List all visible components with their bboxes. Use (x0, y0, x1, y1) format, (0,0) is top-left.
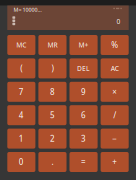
staticText: 8 (50, 86, 55, 97)
staticText: 7 (19, 86, 24, 97)
button[interactable]: MR (38, 35, 66, 55)
button[interactable]: = (69, 152, 98, 172)
staticText: = (81, 157, 86, 167)
staticText: AC (111, 64, 119, 73)
button[interactable]: 8 (38, 82, 66, 102)
staticText: 3 (81, 133, 86, 144)
staticText: DEL (77, 64, 90, 73)
button[interactable]: MC (7, 35, 35, 55)
button[interactable]: 0 (7, 152, 35, 172)
staticText: M+ (78, 41, 88, 49)
staticText: / (113, 110, 116, 120)
staticText: 2 (50, 133, 55, 144)
staticText: + (112, 157, 117, 167)
button[interactable]: M+ (69, 35, 98, 55)
button[interactable]: ( (7, 58, 35, 78)
button[interactable]: DEL (69, 58, 98, 78)
button[interactable]: 9 (69, 82, 98, 102)
button[interactable]: % (101, 35, 129, 55)
staticText: − (112, 133, 117, 144)
staticText: ( (20, 63, 22, 74)
staticText: ) (51, 63, 53, 74)
button[interactable]: ) (38, 58, 66, 78)
staticText: 0 (19, 157, 24, 167)
button[interactable]: AC (101, 58, 129, 78)
staticText: 5 (50, 110, 55, 120)
staticText: 9 (81, 86, 86, 97)
button[interactable]: − (101, 129, 129, 149)
button[interactable]: 2 (38, 129, 66, 149)
staticText: 0 (116, 17, 120, 26)
button[interactable]: + (101, 152, 129, 172)
staticText: 6 (81, 110, 86, 120)
staticText: MR (47, 41, 57, 49)
staticText: × (112, 86, 117, 97)
button[interactable]: 1 (7, 129, 35, 149)
button[interactable]: × (101, 82, 129, 102)
staticText: M= 10000… (14, 6, 42, 13)
staticText: 1 (19, 133, 24, 144)
button[interactable]: . (38, 152, 66, 172)
staticText: MC (16, 41, 26, 49)
button[interactable]: 5 (38, 105, 66, 125)
button[interactable]: 4 (7, 105, 35, 125)
button[interactable]: 7 (7, 82, 35, 102)
staticText: % (111, 40, 118, 50)
button[interactable]: 3 (69, 129, 98, 149)
staticText: 4 (19, 110, 24, 120)
staticText: . (51, 157, 53, 167)
button[interactable]: 6 (69, 105, 98, 125)
button[interactable]: / (101, 105, 129, 125)
